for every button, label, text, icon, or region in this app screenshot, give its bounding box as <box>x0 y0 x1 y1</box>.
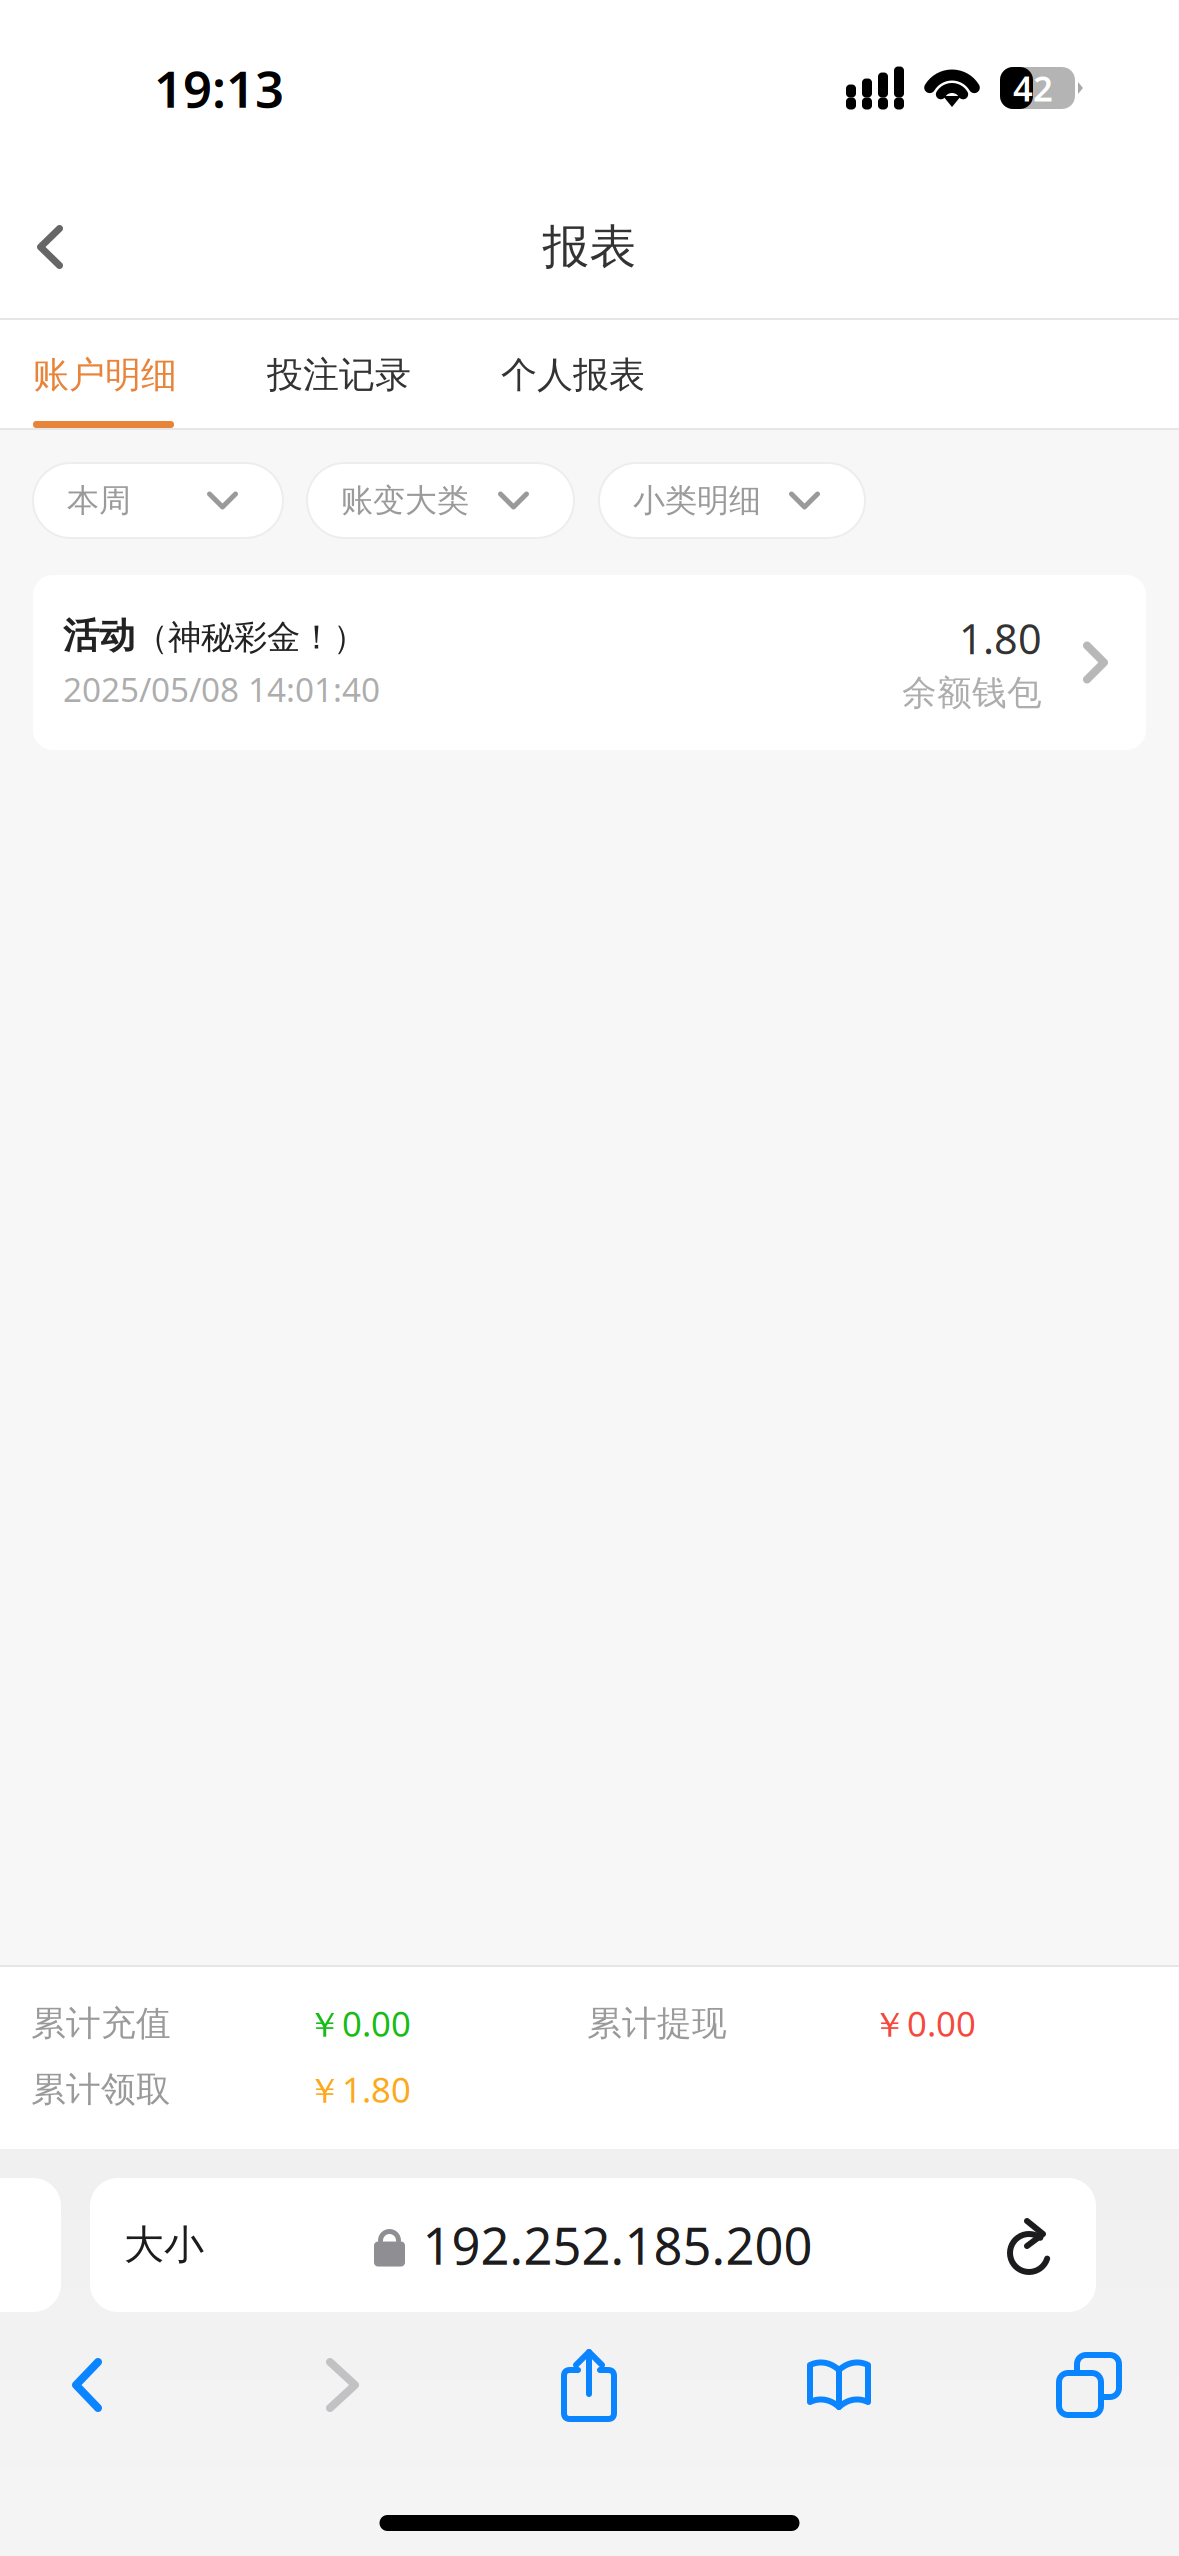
button[interactable]: Back <box>0 192 100 302</box>
staticText: 个人报表 <box>501 353 645 397</box>
button[interactable]: 大小 <box>90 2178 1096 2312</box>
button[interactable]: 账变大类 <box>307 463 574 538</box>
staticText: 19:13 <box>154 54 284 122</box>
button[interactable]: 个人报表 <box>501 320 735 428</box>
staticText: 投注记录 <box>267 353 411 397</box>
staticText: 账户明细 <box>33 353 177 397</box>
staticText: （神秘彩金！） <box>135 617 366 658</box>
button[interactable]: Bookmarks <box>667 2337 1011 2433</box>
button[interactable]: 投注记录 <box>267 320 501 428</box>
staticText: 2025/05/08 14:01:40 <box>63 667 380 711</box>
staticText: 大小 <box>124 2220 204 2269</box>
staticText: 小类明细 <box>633 481 761 520</box>
staticText: 42 <box>1013 65 1053 111</box>
staticText: 本周 <box>67 481 131 520</box>
staticText: 账变大类 <box>341 481 469 520</box>
button[interactable]: Back <box>0 2337 174 2433</box>
button[interactable]: Share <box>511 2337 667 2433</box>
staticText: ￥1.80 <box>307 2066 411 2113</box>
staticText: 累计领取 <box>31 2068 171 2111</box>
staticText: 192.252.185.200 <box>422 2211 812 2279</box>
staticText: ￥0.00 <box>872 2000 976 2047</box>
staticText: ￥0.00 <box>307 2000 411 2047</box>
staticText: 报表 <box>542 218 636 276</box>
staticText: 累计充值 <box>31 2002 171 2045</box>
button[interactable]: 小类明细 <box>599 463 865 538</box>
button[interactable]: 本周 <box>33 463 283 538</box>
staticText: 活动 <box>63 614 135 658</box>
staticText: 余额钱包 <box>902 672 1042 714</box>
button[interactable]: Tabs <box>1011 2337 1167 2433</box>
button[interactable]: 账户明细 <box>33 320 267 428</box>
button[interactable]: Forward <box>174 2337 511 2433</box>
staticText: 1.80 <box>959 611 1042 666</box>
button[interactable]: 活动 <box>33 575 1146 750</box>
staticText: 累计提现 <box>587 2002 727 2045</box>
